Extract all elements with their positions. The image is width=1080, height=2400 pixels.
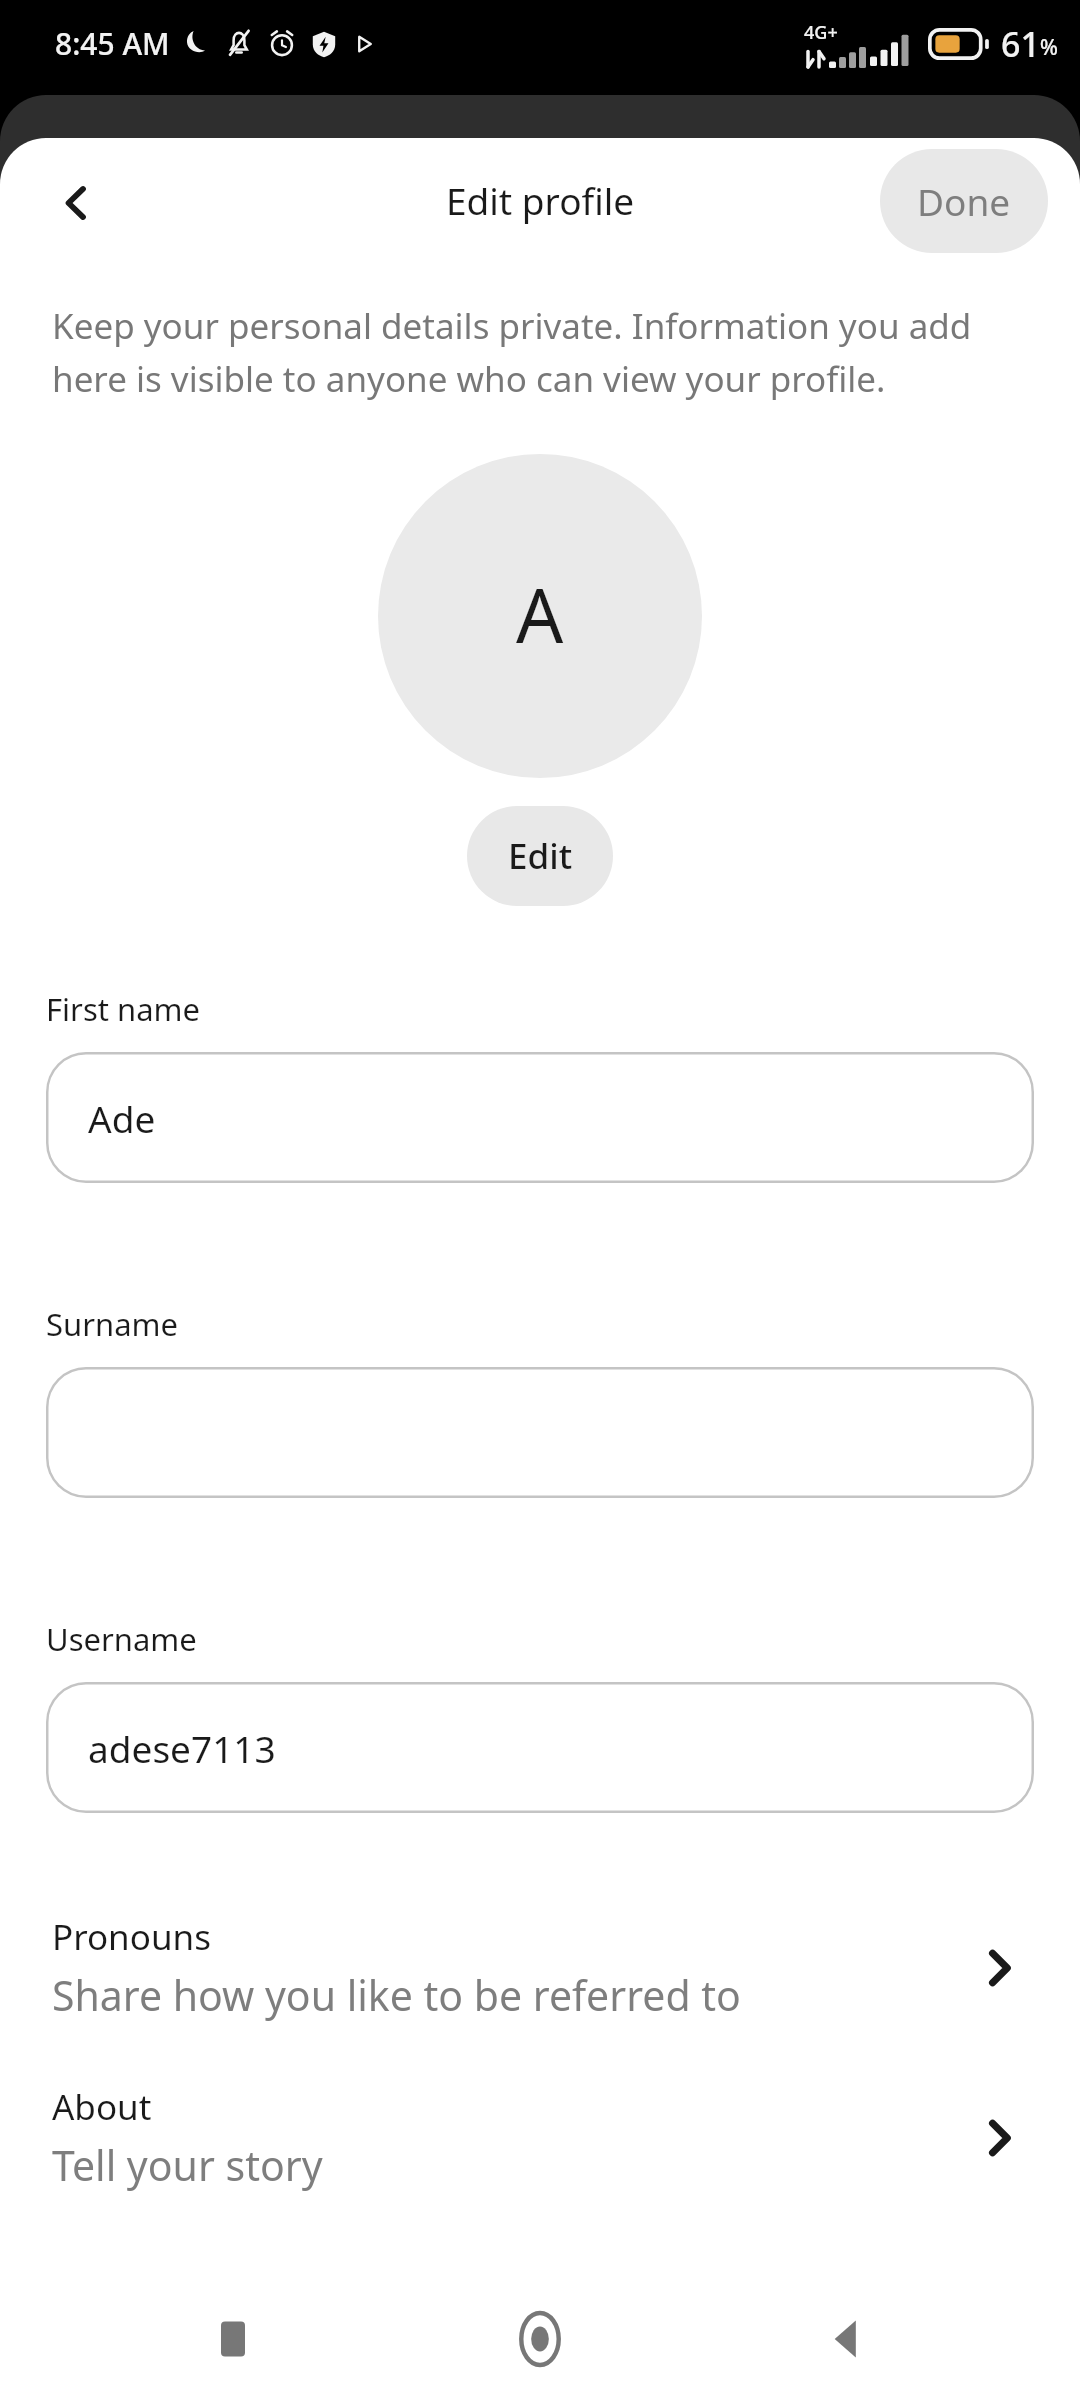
- button[interactable]: Done: [880, 149, 1048, 253]
- button[interactable]: adese7113: [46, 1682, 1034, 1813]
- staticText: 4G+: [804, 20, 838, 45]
- staticText: Edit profile: [446, 175, 635, 225]
- staticText: First name: [46, 988, 201, 1030]
- button[interactable]: Pronouns: [0, 1913, 1080, 2023]
- button[interactable]: [46, 1367, 1034, 1498]
- button[interactable]: Back: [34, 161, 118, 245]
- button[interactable]: Ade: [46, 1052, 1034, 1183]
- staticText: A: [516, 564, 564, 665]
- button[interactable]: Profile photo: [378, 454, 702, 778]
- staticText: adese7113: [88, 1723, 276, 1773]
- staticText: %: [1040, 33, 1058, 62]
- staticText: Tell your story: [52, 2137, 323, 2193]
- button[interactable]: About: [0, 2083, 1080, 2193]
- staticText: Ade: [88, 1093, 156, 1143]
- staticText: Share how you like to be referred to: [52, 1967, 741, 2023]
- staticText: Surname: [46, 1303, 178, 1345]
- staticText: About: [52, 2083, 152, 2131]
- staticText: 61: [1001, 21, 1040, 67]
- button[interactable]: Pronouns: [960, 1929, 1038, 2007]
- staticText: Keep your personal details private. Info…: [52, 302, 1024, 402]
- staticText: Pronouns: [52, 1913, 211, 1961]
- button[interactable]: About: [960, 2099, 1038, 2177]
- staticText: 8:45 AM: [55, 23, 170, 64]
- staticText: Username: [46, 1618, 197, 1660]
- button[interactable]: Recent apps: [190, 2296, 276, 2382]
- button[interactable]: Back: [804, 2296, 890, 2382]
- staticText: Edit: [508, 832, 573, 880]
- button[interactable]: Home: [497, 2296, 583, 2382]
- staticText: Done: [917, 176, 1011, 226]
- button[interactable]: Edit: [467, 806, 613, 906]
